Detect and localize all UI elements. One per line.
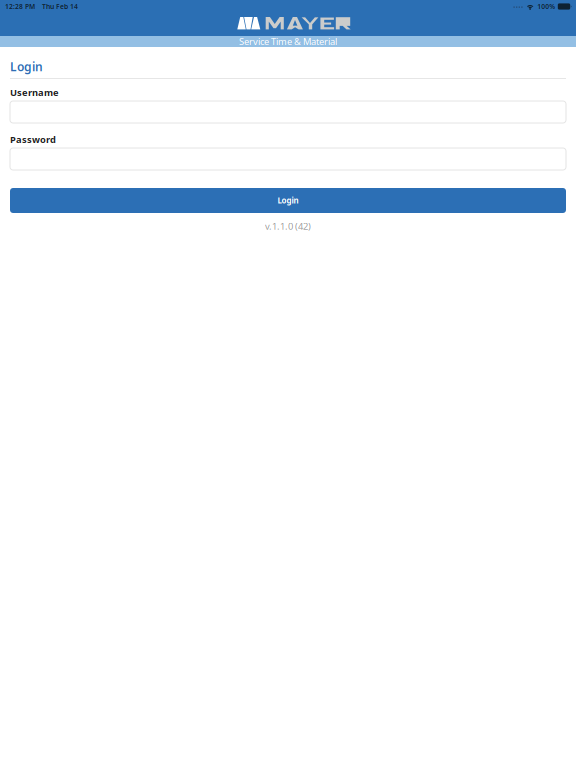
staticText: Service Time & Material: [239, 35, 337, 48]
staticText: 100%: [537, 2, 555, 11]
staticText: Login: [10, 58, 43, 74]
button[interactable]: Login: [10, 188, 566, 213]
staticText: v.1.1.0 (42): [265, 220, 311, 232]
staticText: Username: [10, 86, 59, 99]
staticText: Thu Feb 14: [42, 2, 78, 11]
staticText: 12:28 PM: [5, 2, 35, 11]
staticText: Login: [277, 195, 298, 206]
staticText: Password: [10, 133, 56, 146]
